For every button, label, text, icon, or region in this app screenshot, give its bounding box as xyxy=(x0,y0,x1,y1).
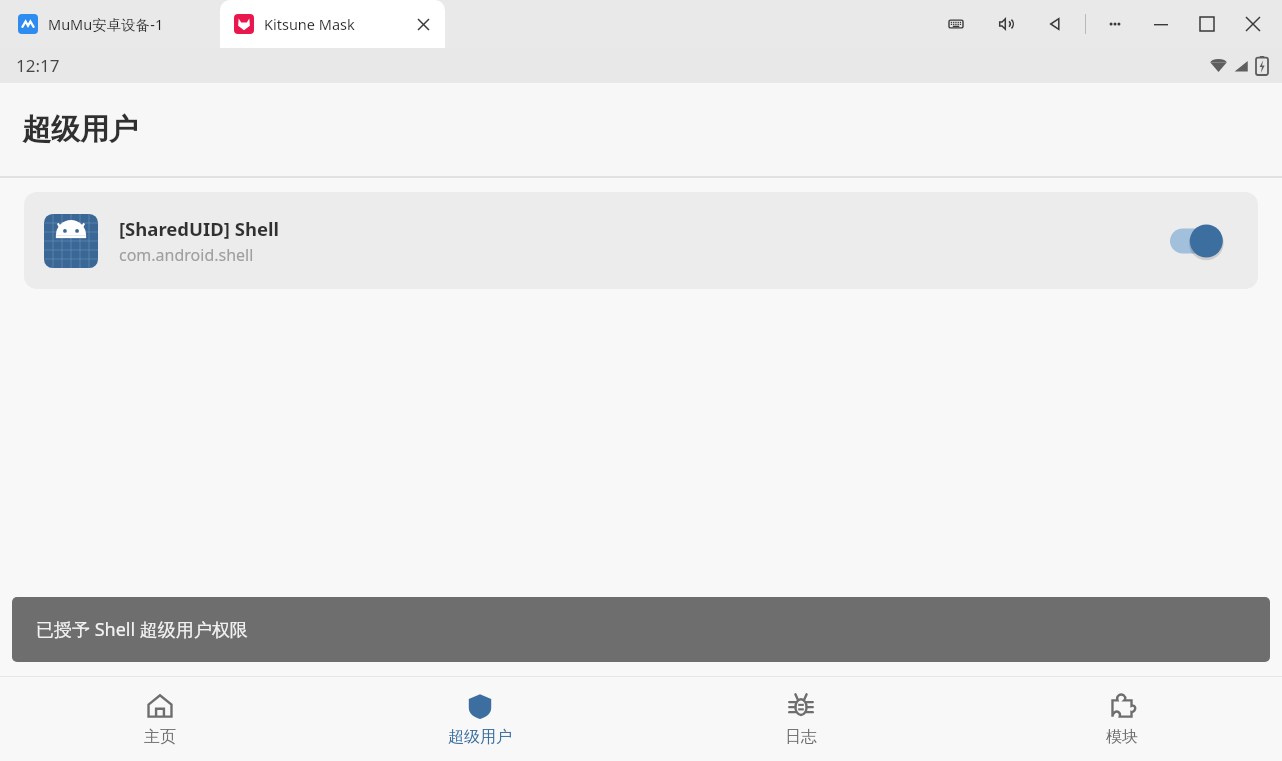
staticText: com.android.shell xyxy=(119,244,254,266)
staticText: MuMu安卓设备-1 xyxy=(48,14,164,34)
staticText: [SharedUID] Shell xyxy=(119,216,280,241)
button[interactable]: Volume xyxy=(991,9,1021,39)
button[interactable]: 模块 xyxy=(961,677,1282,761)
staticText: 超级用户 xyxy=(22,111,138,148)
button[interactable]: 已授予 Shell 超级用户权限 xyxy=(12,597,1270,662)
staticText: Kitsune Mask xyxy=(264,14,355,34)
staticText: 模块 xyxy=(1106,727,1138,747)
button[interactable]: More xyxy=(1100,9,1130,39)
staticText: 日志 xyxy=(785,727,817,747)
button[interactable]: [SharedUID] Shell xyxy=(24,192,1258,289)
button[interactable]: Close tab xyxy=(409,10,437,38)
button[interactable]: MuMu安卓设备-1 xyxy=(8,0,218,48)
button[interactable]: 主页 xyxy=(0,677,320,761)
staticText: 已授予 Shell 超级用户权限 xyxy=(36,617,248,642)
button[interactable]: 日志 xyxy=(640,677,961,761)
staticText: 主页 xyxy=(144,727,176,747)
button[interactable]: Maximize xyxy=(1192,9,1222,39)
button[interactable]: 超级用户 xyxy=(320,677,640,761)
button[interactable]: Toggle superuser xyxy=(1170,221,1228,261)
button[interactable]: Keyboard xyxy=(941,9,971,39)
staticText: 超级用户 xyxy=(448,727,512,747)
button[interactable]: Close xyxy=(1238,9,1268,39)
button[interactable]: Kitsune Mask xyxy=(220,0,445,48)
button[interactable]: Back xyxy=(1041,9,1071,39)
button[interactable]: Minimize xyxy=(1146,9,1176,39)
staticText: 12:17 xyxy=(16,54,60,77)
